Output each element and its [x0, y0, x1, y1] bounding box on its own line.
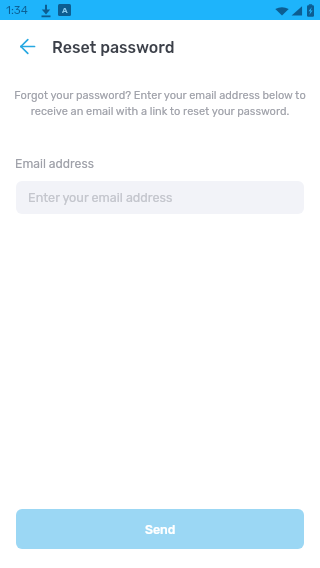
- staticText: Reset password: [52, 38, 175, 57]
- staticText: 1:34: [6, 3, 28, 17]
- button[interactable]: Back: [0, 20, 46, 66]
- staticText: Email address: [15, 157, 94, 171]
- staticText: A: [62, 6, 68, 15]
- staticText: Send: [145, 522, 176, 537]
- staticText: Forgot your password? Enter your email a…: [12, 89, 308, 118]
- staticText: Enter your email address: [28, 190, 173, 205]
- button[interactable]: Enter your email address: [16, 181, 304, 214]
- button[interactable]: Send: [16, 509, 304, 549]
